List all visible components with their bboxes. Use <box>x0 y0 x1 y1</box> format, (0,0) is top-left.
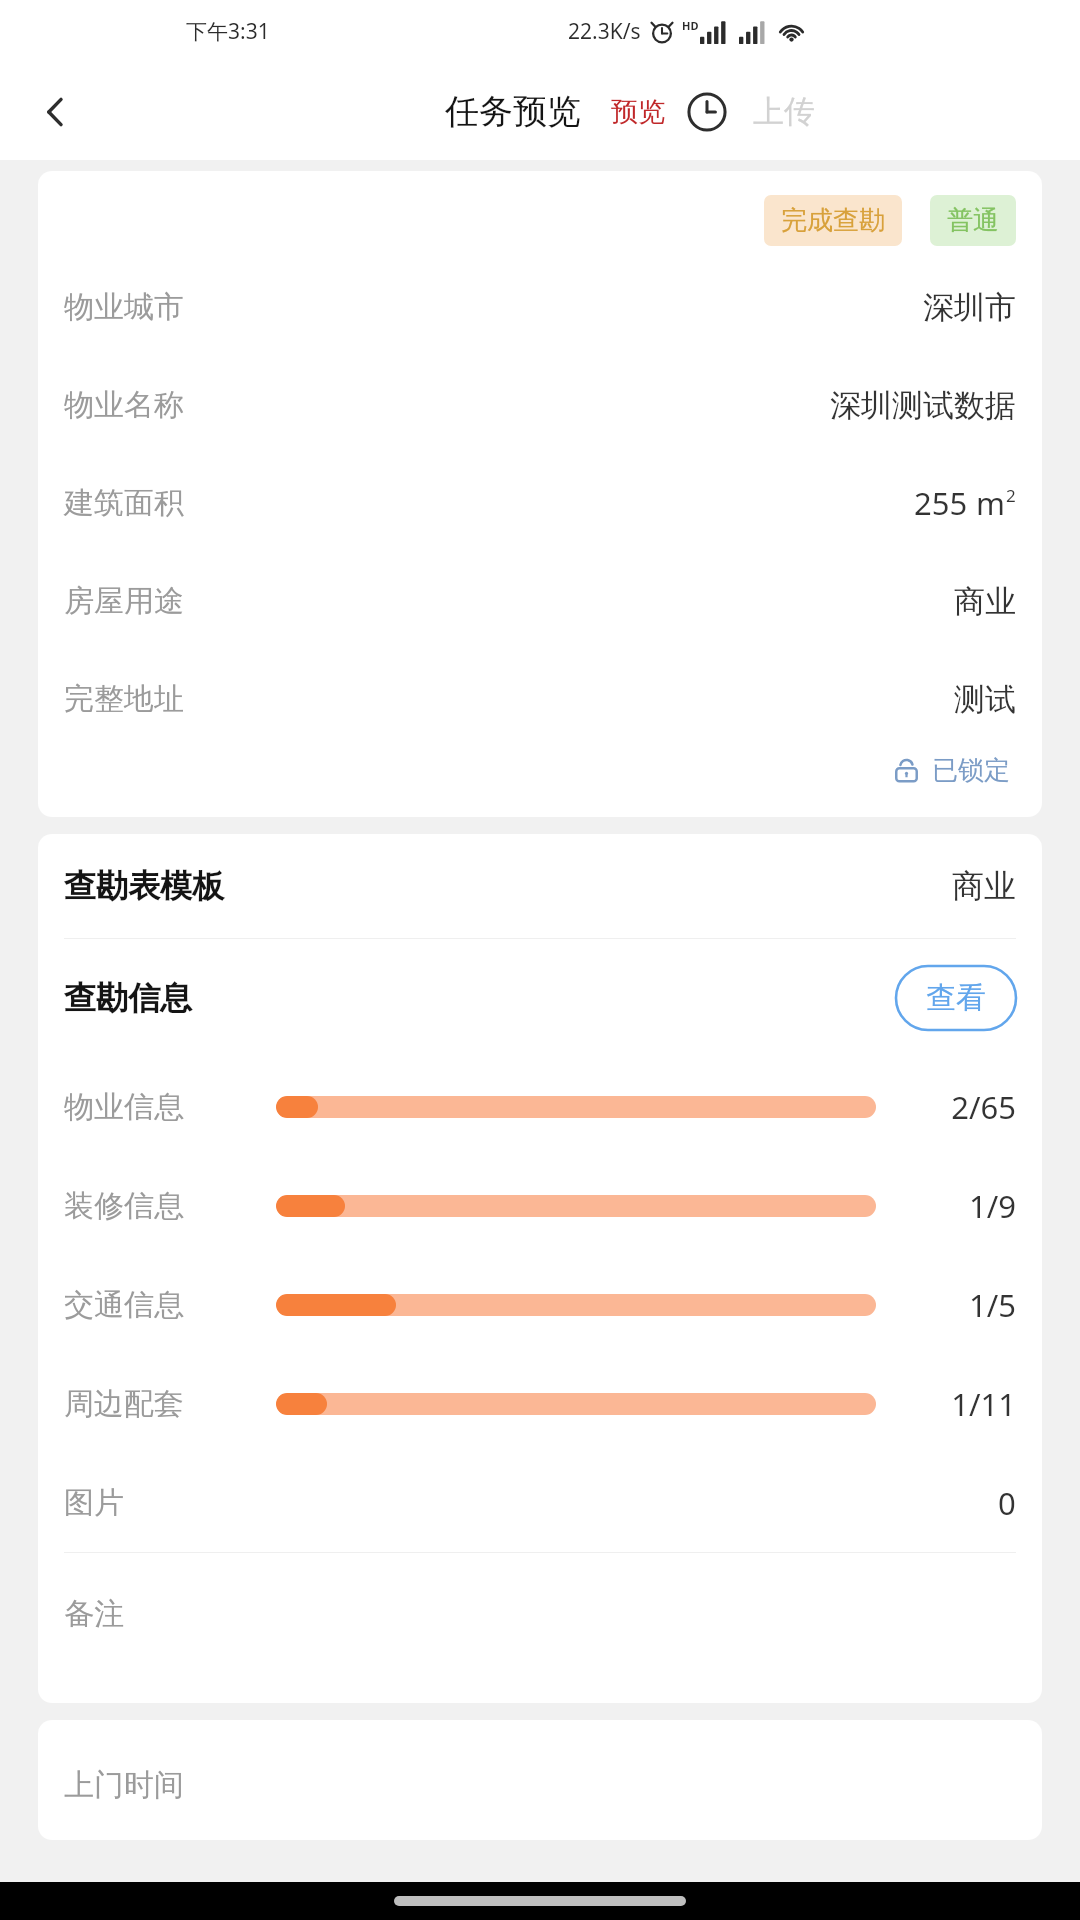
staticText: 1/9 <box>898 1185 1016 1227</box>
button[interactable]: 查看 <box>896 966 1016 1030</box>
staticText: 备注 <box>64 1595 124 1633</box>
staticText: 下午3:31 <box>186 17 270 46</box>
staticText: 预览 <box>611 95 665 129</box>
staticText: 物业信息 <box>64 1088 254 1126</box>
staticText: 完成查勘 <box>781 204 885 237</box>
button[interactable]: 上传 <box>749 84 819 139</box>
button[interactable]: History <box>681 86 733 138</box>
button[interactable]: 完成查勘 <box>764 195 902 246</box>
staticText: 上门时间 <box>64 1766 184 1804</box>
staticText: 普通 <box>947 204 999 237</box>
staticText: 完整地址 <box>64 680 184 718</box>
staticText: 建筑面积 <box>64 484 184 522</box>
staticText: 深圳市 <box>923 288 1016 327</box>
staticText: 任务预览 <box>445 90 581 133</box>
staticText: 测试 <box>954 680 1016 719</box>
staticText: 255 <box>914 482 968 524</box>
staticText: 深圳测试数据 <box>830 386 1016 425</box>
staticText: 0 <box>998 1482 1016 1524</box>
button[interactable]: 普通 <box>930 195 1016 246</box>
staticText: 已锁定 <box>932 754 1010 787</box>
staticText: 周边配套 <box>64 1385 254 1423</box>
staticText: 房屋用途 <box>64 582 184 620</box>
staticText: 1/5 <box>898 1284 1016 1326</box>
staticText: 22.3K/s <box>568 17 641 46</box>
staticText: 2 <box>1006 484 1016 507</box>
staticText: 查勘表模板 <box>64 866 224 906</box>
button[interactable]: 已锁定 <box>885 748 1016 793</box>
staticText: 2/65 <box>898 1086 1016 1128</box>
button[interactable]: Back <box>22 78 90 146</box>
staticText: 物业城市 <box>64 288 184 326</box>
staticText: m <box>968 482 1006 524</box>
staticText: 商业 <box>954 582 1016 621</box>
staticText: 查勘信息 <box>64 978 192 1018</box>
button[interactable]: 预览 <box>607 87 669 137</box>
staticText: 图片 <box>64 1484 124 1522</box>
staticText: HD <box>682 18 699 33</box>
staticText: 交通信息 <box>64 1286 254 1324</box>
staticText: 装修信息 <box>64 1187 254 1225</box>
staticText: 查看 <box>926 979 986 1017</box>
staticText: 上传 <box>753 92 815 131</box>
staticText: 1/11 <box>898 1383 1016 1425</box>
staticText: 商业 <box>952 866 1016 906</box>
staticText: 物业名称 <box>64 386 184 424</box>
